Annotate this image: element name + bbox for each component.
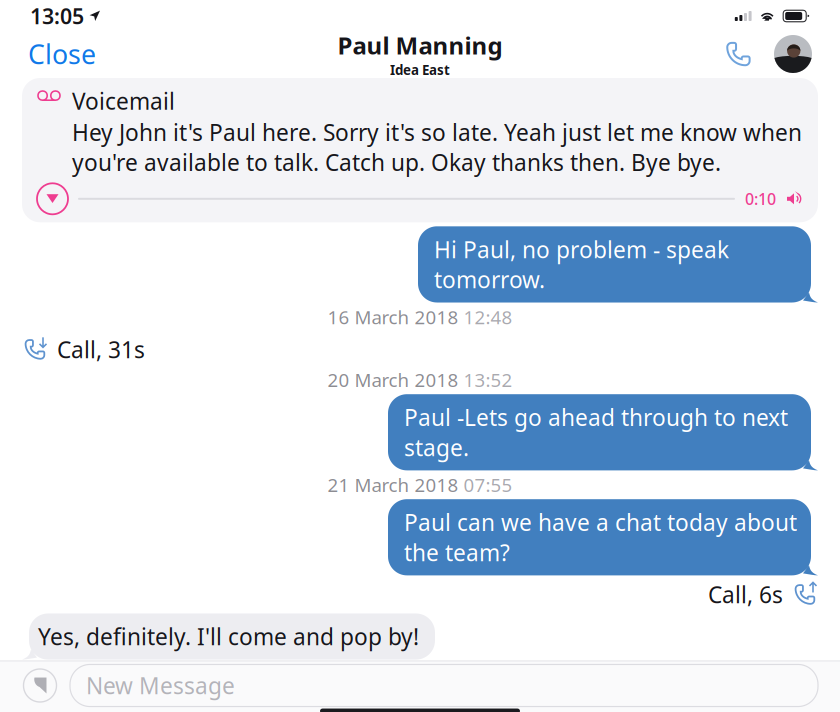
staticText: 12:48 [463, 304, 512, 329]
button[interactable]: Play voicemail [37, 183, 68, 214]
staticText: Paul Manning [337, 29, 502, 61]
button[interactable]: Call, 31s [22, 332, 145, 366]
staticText: Paul can we have a chat today about the … [404, 507, 797, 567]
staticText: Close [28, 36, 96, 72]
staticText: Yes, definitely. I'll come and pop by! [38, 621, 419, 652]
button[interactable]: Call, 6s [708, 577, 818, 611]
staticText: 16 March 2018 [327, 304, 463, 329]
button[interactable]: Audio message [22, 667, 58, 703]
staticText: Call, 31s [57, 334, 145, 364]
button[interactable]: New Message [70, 664, 818, 706]
staticText: Call, 6s [708, 579, 783, 609]
staticText: 21 March 2018 [327, 472, 463, 497]
staticText: 0:10 [745, 188, 776, 209]
staticText: Hi Paul, no problem - speak tomorrow. [434, 234, 729, 294]
button[interactable]: Speaker [786, 192, 803, 206]
button[interactable]: Close [28, 30, 106, 78]
button[interactable]: Call [719, 34, 758, 73]
staticText: New Message [86, 670, 235, 700]
staticText: 20 March 2018 [327, 367, 463, 392]
staticText: 07:55 [463, 472, 512, 497]
staticText: Idea East [390, 61, 450, 79]
staticText: 13:05 [30, 2, 84, 30]
staticText: 13:52 [463, 367, 512, 392]
staticText: Paul -Lets go ahead through to next stag… [404, 402, 788, 462]
staticText: Hey John it's Paul here. Sorry it's so l… [72, 117, 802, 177]
button[interactable]: Contact info [774, 35, 812, 73]
staticText: Voicemail [72, 86, 175, 116]
